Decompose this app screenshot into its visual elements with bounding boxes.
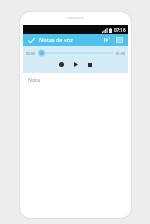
button[interactable]: Navigate up bbox=[27, 36, 36, 45]
staticText: 01:08 bbox=[113, 51, 125, 56]
button[interactable]: Record bbox=[56, 59, 67, 70]
button[interactable]: Play bbox=[70, 59, 81, 70]
staticText: 07:16 bbox=[114, 27, 126, 33]
button[interactable]: Menu bbox=[114, 35, 124, 45]
button[interactable]: Stop bbox=[84, 59, 95, 70]
staticText: Notas de voz bbox=[39, 36, 102, 44]
button[interactable]: Record quality bbox=[102, 35, 112, 45]
button[interactable]: Seek position bbox=[38, 49, 113, 57]
staticText: Nota bbox=[28, 76, 40, 83]
staticText: 00:00 bbox=[26, 51, 38, 56]
